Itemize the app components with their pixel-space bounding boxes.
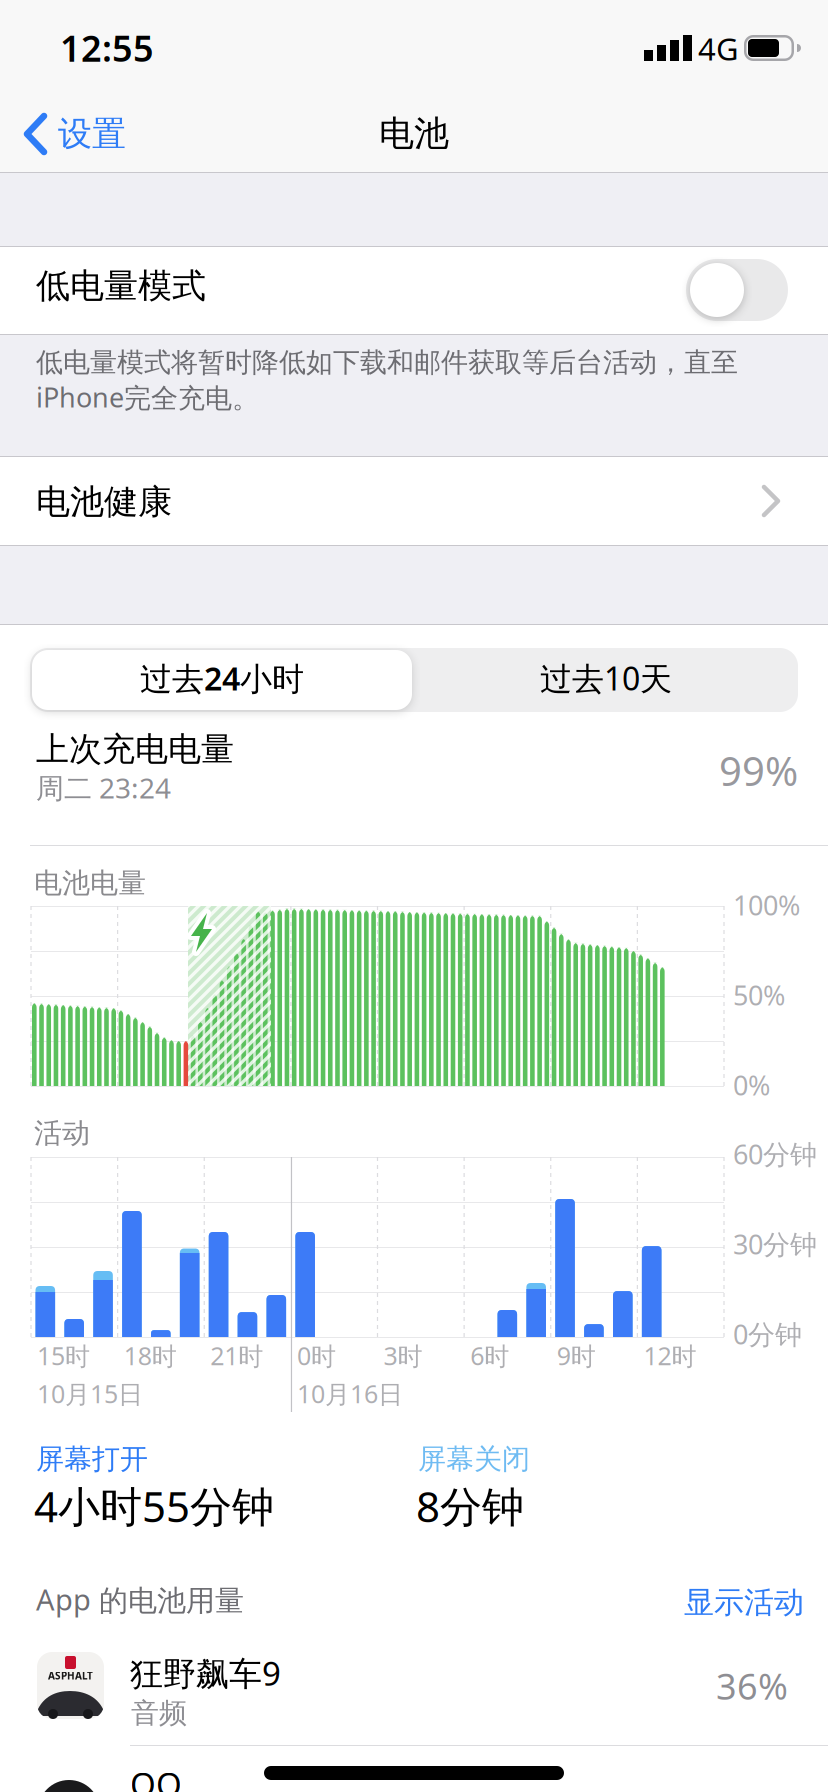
staticText: 36% [716,1662,788,1710]
staticText: 18时 [124,1339,177,1372]
staticText: 12:55 [60,24,154,72]
staticText: 周二 23:24 [36,769,171,806]
staticText: 21时 [210,1339,263,1372]
button[interactable]: 过去24小时 [30,648,414,712]
staticText: 显示活动 [684,1584,804,1621]
staticText: 设置 [58,113,126,155]
staticText: 9时 [557,1339,596,1372]
staticText: 0分钟 [733,1316,802,1352]
staticText: 电池 [379,112,449,155]
button[interactable]: 设置 [24,111,126,157]
staticText: 电池健康 [36,481,172,523]
staticText: 99% [719,744,798,797]
staticText: 上次充电电量 [36,729,234,769]
staticText: 15时 [37,1339,90,1372]
button[interactable]: 显示活动 [684,1584,804,1621]
staticText: 4小时55分钟 [34,1478,274,1534]
staticText: QQ [130,1762,182,1792]
staticText: 狂野飙车9 [130,1651,281,1695]
button[interactable]: 电池健康 [0,457,828,545]
staticText: App 的电池用量 [36,1580,244,1619]
staticText: 10月16日 [297,1377,403,1410]
staticText: 8分钟 [416,1478,524,1534]
staticText: 10月15日 [37,1377,143,1410]
staticText: 低电量模式 [36,265,206,307]
staticText: 30分钟 [733,1226,817,1262]
staticText: 4G [698,28,739,69]
staticText: 过去24小时 [140,657,304,699]
staticText: 音频 [131,1696,187,1730]
staticText: 3时 [383,1339,422,1372]
staticText: 12时 [643,1339,696,1372]
staticText: 屏幕关闭 [418,1442,530,1476]
staticText: 6时 [470,1339,509,1372]
button[interactable]: 低电量模式 [686,259,788,321]
staticText: 低电量模式将暂时降低如下载和邮件获取等后台活动，直至 iPhone完全充电。 [36,346,738,415]
staticText: 0时 [297,1339,336,1372]
button[interactable]: ASPHALT [0,1626,828,1745]
button[interactable]: QQ [0,1746,828,1792]
staticText: 0% [733,1067,770,1103]
button[interactable]: 过去10天 [414,648,798,712]
staticText: 活动 [34,1116,90,1150]
staticText: 50% [733,977,785,1013]
staticText: 过去10天 [540,657,672,699]
staticText: 100% [733,887,800,923]
staticText: 屏幕打开 [36,1442,148,1476]
staticText: 电池电量 [34,866,146,900]
staticText: ASPHALT [48,1669,93,1682]
staticText: 60分钟 [733,1136,817,1172]
